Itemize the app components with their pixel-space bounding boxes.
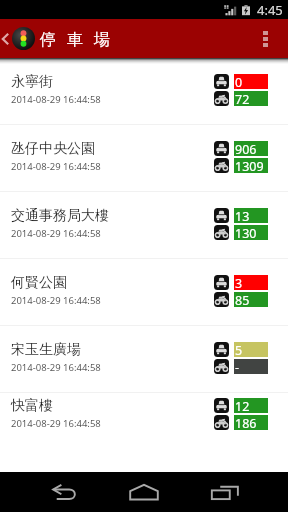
staticText: 1309	[235, 158, 264, 173]
button[interactable]: 快富樓	[0, 393, 288, 437]
staticText: 何賢公園	[11, 274, 67, 292]
button[interactable]: More options	[251, 19, 279, 58]
button[interactable]: Back	[0, 19, 11, 58]
staticText: 4:45	[257, 1, 283, 19]
staticText: 0	[235, 74, 243, 89]
staticText: 停 車 場	[40, 28, 111, 50]
staticText: 永寧街	[11, 73, 53, 91]
button[interactable]: 氹仔中央公園	[0, 125, 288, 192]
staticText: 宋玉生廣場	[11, 341, 81, 359]
staticText: 2014-08-29 16:44:58	[11, 227, 101, 240]
staticText: 72	[235, 91, 250, 106]
button[interactable]: Back	[34, 472, 94, 512]
staticText: 快富樓	[11, 397, 53, 415]
staticText: 906	[235, 141, 257, 156]
staticText: 12	[235, 398, 250, 413]
staticText: 2014-08-29 16:44:58	[11, 294, 101, 307]
staticText: -	[235, 359, 240, 374]
staticText: 交通事務局大樓	[11, 207, 109, 225]
staticText: 5	[235, 342, 243, 357]
staticText: 2014-08-29 16:44:58	[11, 361, 101, 374]
staticText: 186	[235, 415, 257, 430]
button[interactable]: 何賢公園	[0, 259, 288, 326]
staticText: 2014-08-29 16:44:58	[11, 160, 101, 173]
staticText: 2014-08-29 16:44:58	[11, 93, 101, 106]
staticText: 3	[235, 275, 243, 290]
button[interactable]: Home	[114, 472, 174, 512]
button[interactable]: Recent apps	[195, 472, 255, 512]
button[interactable]: 永寧街	[0, 58, 288, 125]
staticText: 130	[235, 225, 257, 240]
staticText: 13	[235, 208, 250, 223]
staticText: 2014-08-29 16:44:58	[11, 417, 101, 430]
button[interactable]: 宋玉生廣場	[0, 326, 288, 393]
button[interactable]: 交通事務局大樓	[0, 192, 288, 259]
staticText: 氹仔中央公園	[11, 140, 95, 158]
staticText: 85	[235, 292, 250, 307]
